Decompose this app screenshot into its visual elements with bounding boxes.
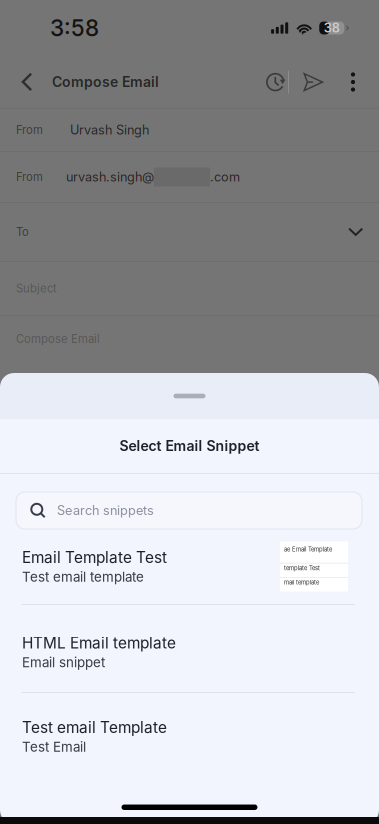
- staticText: Search snippets: [57, 503, 154, 518]
- staticText: From: [16, 123, 43, 137]
- staticText: To: [16, 225, 29, 239]
- staticText: 3:58: [50, 14, 99, 42]
- staticText: mail template: [284, 579, 319, 586]
- button[interactable]: Email Template Test: [0, 529, 379, 604]
- staticText: Select Email Snippet: [119, 437, 259, 454]
- staticText: urvash.singh@: [66, 169, 154, 185]
- staticText: template Test: [284, 564, 320, 572]
- staticText: .com: [210, 169, 240, 185]
- staticText: Test Email: [22, 739, 86, 755]
- staticText: Subject: [16, 282, 57, 295]
- button[interactable]: More options: [338, 56, 368, 108]
- staticText: ae Email Template: [284, 546, 332, 553]
- staticText: Compose Email: [52, 73, 159, 90]
- button[interactable]: HTML Email template: [0, 605, 379, 692]
- button[interactable]: Back: [6, 56, 48, 108]
- staticText: Test email Template: [22, 718, 167, 737]
- button[interactable]: Schedule send: [263, 56, 288, 108]
- button[interactable]: To: [0, 203, 379, 261]
- staticText: HTML Email template: [22, 634, 176, 652]
- staticText: Test email template: [22, 569, 144, 585]
- staticText: Urvash Singh: [70, 122, 149, 138]
- staticText: 38: [324, 20, 340, 36]
- button[interactable]: Send: [289, 56, 338, 108]
- staticText: Email snippet: [22, 654, 105, 670]
- staticText: Compose Email: [16, 332, 100, 346]
- staticText: From: [16, 170, 43, 184]
- staticText: Email Template Test: [22, 548, 167, 567]
- button[interactable]: Test email Template: [0, 693, 379, 780]
